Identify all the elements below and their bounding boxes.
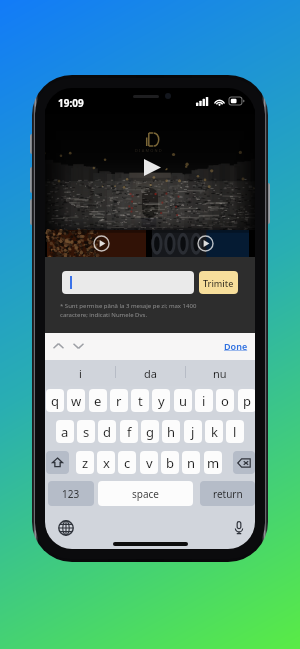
button[interactable]: v [140,451,158,474]
button[interactable]: Change keyboard [58,520,74,536]
button[interactable]: Previous field [53,341,64,351]
staticText: return [213,487,243,501]
button[interactable]: Trimite [199,271,238,294]
button[interactable]: r [110,389,128,412]
button[interactable]: m [204,451,222,474]
staticText: f [127,423,132,441]
staticText: d [103,423,111,441]
staticText: o [221,392,229,410]
staticText: Trimite [203,277,234,289]
button[interactable]: Backspace [233,451,255,474]
staticText: 19:09 [58,96,84,110]
staticText: x [103,454,110,472]
staticText: w [71,392,82,410]
button[interactable]: Done [223,338,249,354]
button[interactable]: e [89,389,107,412]
button[interactable]: d [98,420,116,443]
staticText: i [202,392,206,410]
staticText: h [167,423,176,441]
staticText: j [191,423,195,441]
button[interactable]: u [174,389,192,412]
staticText: r [116,392,122,410]
button[interactable]: c [118,451,136,474]
button[interactable]: l [226,420,244,443]
button[interactable]: Play video [144,159,161,176]
staticText: z [82,454,89,472]
button[interactable]: f [120,420,138,443]
staticText: g [146,423,154,441]
button[interactable]: space [98,481,193,506]
button[interactable]: n [182,451,200,474]
button[interactable]: x [97,451,115,474]
staticText: t [138,392,143,410]
staticText: c [124,454,131,472]
button[interactable]: j [184,420,202,443]
button[interactable]: Shift [46,451,69,474]
staticText: m [207,454,220,472]
staticText: e [94,392,102,410]
button[interactable]: a [56,420,74,443]
button[interactable]: Next field [73,341,84,351]
staticText: v [146,454,153,472]
staticText: nu [213,366,227,381]
staticText: p [243,392,251,410]
staticText: a [61,423,69,441]
button[interactable]: s [77,420,95,443]
staticText: DIAMOND [135,148,163,153]
staticText: s [83,423,90,441]
staticText: y [158,392,165,410]
staticText: da [144,366,157,381]
button[interactable]: i [195,389,213,412]
staticText: 123 [62,487,80,501]
button[interactable]: h [162,420,180,443]
button[interactable]: p [238,389,255,412]
button[interactable]: y [152,389,170,412]
button[interactable]: return [200,481,255,506]
button[interactable] [62,271,194,294]
staticText: b [166,454,174,472]
button[interactable]: q [46,389,64,412]
button[interactable]: da [115,360,185,386]
button[interactable]: nu [185,360,255,386]
button[interactable]: z [76,451,94,474]
staticText: * Sunt permise până la 3 mesaje pe zi; m… [60,302,197,310]
staticText: l [233,423,237,441]
staticText: space [132,487,159,501]
button[interactable]: Dictation [235,521,243,534]
staticText: u [179,392,188,410]
staticText: q [51,392,59,410]
button[interactable]: o [216,389,234,412]
staticText: i [79,366,82,381]
button[interactable]: w [67,389,85,412]
button[interactable]: k [205,420,223,443]
staticText: Done [224,340,248,352]
button[interactable]: b [161,451,179,474]
button[interactable] [152,230,249,258]
button[interactable]: i [45,360,115,386]
button[interactable] [47,230,146,258]
staticText: n [187,454,196,472]
button[interactable]: t [131,389,149,412]
button[interactable]: g [141,420,159,443]
button[interactable]: 123 [48,481,94,506]
staticText: caractere; indicati Numele Dvs. [60,311,147,319]
staticText: k [211,423,218,441]
